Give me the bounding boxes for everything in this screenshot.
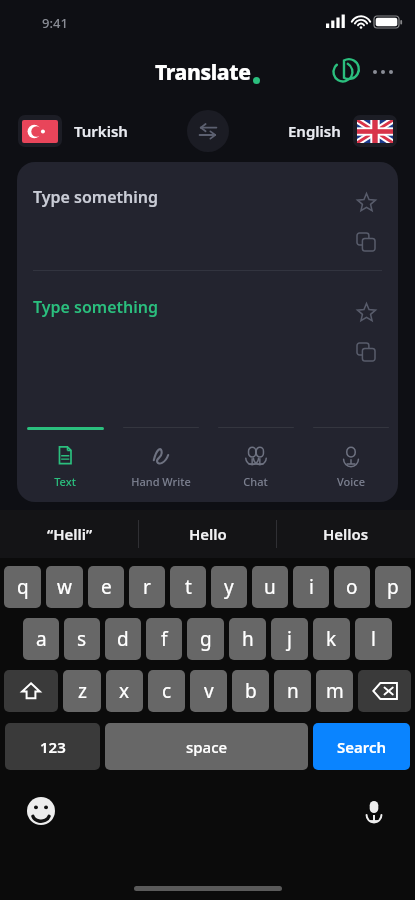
button[interactable]: More options xyxy=(367,56,399,88)
button[interactable]: j xyxy=(271,618,308,660)
staticText: f xyxy=(161,626,168,652)
staticText: 9:41 xyxy=(42,14,68,32)
button[interactable]: c xyxy=(148,670,185,712)
staticText: o xyxy=(346,574,358,600)
button[interactable]: Copy source text xyxy=(350,226,382,258)
staticText: Type something xyxy=(33,186,159,208)
staticText: p xyxy=(387,574,399,600)
button[interactable]: i xyxy=(293,566,329,608)
staticText: x xyxy=(119,678,130,704)
staticText: Hand Write xyxy=(131,474,191,489)
staticText: Hellos xyxy=(323,524,369,544)
button[interactable]: 123 xyxy=(5,723,100,770)
staticText: 123 xyxy=(40,737,66,757)
staticText: “Helli” xyxy=(47,524,93,544)
staticText: Search xyxy=(337,737,387,757)
staticText: Text xyxy=(54,474,76,489)
button[interactable]: Favorite translation xyxy=(350,296,382,328)
staticText: z xyxy=(78,678,87,704)
button[interactable]: b xyxy=(232,670,269,712)
button[interactable]: Search xyxy=(313,723,410,770)
button[interactable]: Swap languages xyxy=(187,110,229,152)
button[interactable]: x xyxy=(106,670,143,712)
button[interactable]: l xyxy=(355,618,392,660)
staticText: q xyxy=(17,574,29,600)
button[interactable]: o xyxy=(334,566,370,608)
button[interactable]: Turkish xyxy=(18,115,128,147)
button[interactable]: t xyxy=(170,566,206,608)
staticText: Turkish xyxy=(74,121,128,141)
button[interactable]: g xyxy=(187,618,224,660)
button[interactable]: Hello xyxy=(139,510,277,558)
button[interactable]: English xyxy=(288,115,397,147)
button[interactable]: Dark mode xyxy=(327,56,359,88)
button[interactable]: z xyxy=(63,670,101,712)
button[interactable]: k xyxy=(313,618,350,660)
staticText: Translate xyxy=(155,58,251,87)
staticText: s xyxy=(77,626,87,652)
button[interactable]: Favorite source text xyxy=(350,186,382,218)
staticText: e xyxy=(101,574,112,600)
button[interactable]: d xyxy=(105,618,141,660)
button[interactable]: Shift xyxy=(4,670,58,712)
button[interactable]: p xyxy=(375,566,411,608)
button[interactable]: v xyxy=(190,670,227,712)
button[interactable]: r xyxy=(129,566,165,608)
button[interactable]: a xyxy=(23,618,59,660)
button[interactable]: h xyxy=(229,618,266,660)
staticText: space xyxy=(186,737,228,757)
staticText: h xyxy=(242,626,254,652)
button[interactable]: space xyxy=(105,723,308,770)
staticText: j xyxy=(287,626,292,652)
button[interactable]: Backspace xyxy=(358,670,411,712)
button[interactable]: Chat xyxy=(208,419,303,502)
staticText: t xyxy=(185,574,192,600)
staticText: u xyxy=(264,574,276,600)
button[interactable]: s xyxy=(64,618,100,660)
button[interactable]: “Helli” xyxy=(0,510,139,558)
staticText: m xyxy=(326,678,344,704)
button[interactable]: w xyxy=(46,566,83,608)
button[interactable]: Copy translation xyxy=(350,336,382,368)
button[interactable]: n xyxy=(274,670,311,712)
button[interactable]: f xyxy=(146,618,182,660)
staticText: Chat xyxy=(243,474,268,489)
staticText: Voice xyxy=(337,474,365,489)
button[interactable]: e xyxy=(88,566,124,608)
staticText: a xyxy=(36,626,47,652)
button[interactable]: Hellos xyxy=(277,510,415,558)
staticText: w xyxy=(57,574,72,600)
button[interactable]: m xyxy=(316,670,353,712)
button[interactable]: Voice xyxy=(303,419,398,502)
button[interactable]: u xyxy=(252,566,288,608)
staticText: l xyxy=(371,626,376,652)
staticText: n xyxy=(287,678,299,704)
staticText: b xyxy=(245,678,257,704)
staticText: English xyxy=(288,121,341,141)
button[interactable]: Hand Write xyxy=(113,419,208,502)
staticText: k xyxy=(326,626,337,652)
staticText: Hello xyxy=(189,524,227,544)
staticText: r xyxy=(143,574,151,600)
button[interactable]: q xyxy=(4,566,41,608)
staticText: y xyxy=(224,574,234,600)
button[interactable]: y xyxy=(211,566,247,608)
button[interactable]: Emoji xyxy=(24,794,58,828)
staticText: g xyxy=(200,626,212,652)
staticText: d xyxy=(117,626,129,652)
staticText: i xyxy=(309,574,314,600)
staticText: v xyxy=(204,678,214,704)
button[interactable]: Text xyxy=(17,419,113,502)
staticText: Type something xyxy=(33,296,159,318)
button[interactable]: Voice input xyxy=(357,794,391,828)
staticText: c xyxy=(162,678,172,704)
